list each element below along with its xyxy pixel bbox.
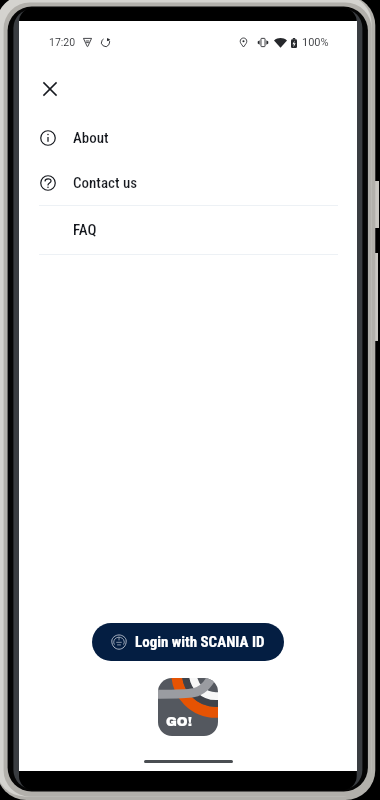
staticText: GO!: [166, 715, 192, 729]
staticText: About: [73, 129, 109, 147]
staticText: Contact us: [73, 174, 138, 192]
button[interactable]: About: [19, 115, 357, 160]
button[interactable]: Close: [29, 68, 71, 110]
staticText: 100%: [302, 36, 329, 49]
staticText: Login with SCANIA ID: [135, 633, 265, 651]
staticText: FAQ: [73, 221, 97, 239]
button[interactable]: FAQ: [19, 206, 357, 254]
button[interactable]: Contact us: [19, 160, 357, 205]
button[interactable]: Login with SCANIA ID: [92, 623, 284, 661]
staticText: 17:20: [49, 36, 76, 48]
